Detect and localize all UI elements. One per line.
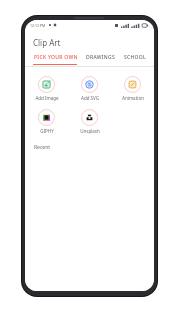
other: Unsplash bbox=[81, 109, 98, 126]
staticText: GIPHY bbox=[40, 128, 54, 134]
button[interactable]: Add Image bbox=[25, 75, 68, 102]
button[interactable]: DRAWINGS bbox=[85, 52, 117, 63]
staticText: PICK YOUR OWN bbox=[34, 54, 78, 61]
staticText: Clip Art bbox=[33, 37, 61, 48]
button[interactable]: Animation bbox=[111, 75, 154, 102]
staticText: Unsplash bbox=[80, 128, 100, 134]
staticText: SCHOOL bbox=[124, 54, 146, 61]
button[interactable]: SCHOOL bbox=[123, 52, 147, 63]
other: GIPHY bbox=[38, 109, 55, 126]
button[interactable]: Add SVG bbox=[68, 75, 111, 102]
button[interactable]: GIPHY bbox=[25, 108, 68, 135]
staticText: Add Image bbox=[35, 95, 59, 101]
other: Add Image bbox=[38, 76, 55, 93]
staticText: Add SVG bbox=[81, 95, 99, 101]
staticText: DRAWINGS bbox=[86, 54, 116, 61]
button[interactable]: Unsplash bbox=[68, 108, 111, 135]
staticText: Animation bbox=[122, 95, 144, 101]
other: Animation bbox=[124, 76, 141, 93]
other: Add SVG bbox=[81, 76, 98, 93]
staticText: Recent bbox=[34, 144, 51, 151]
button[interactable]: PICK YOUR OWN bbox=[33, 52, 79, 63]
staticText: 12:13 PM bbox=[30, 23, 46, 28]
